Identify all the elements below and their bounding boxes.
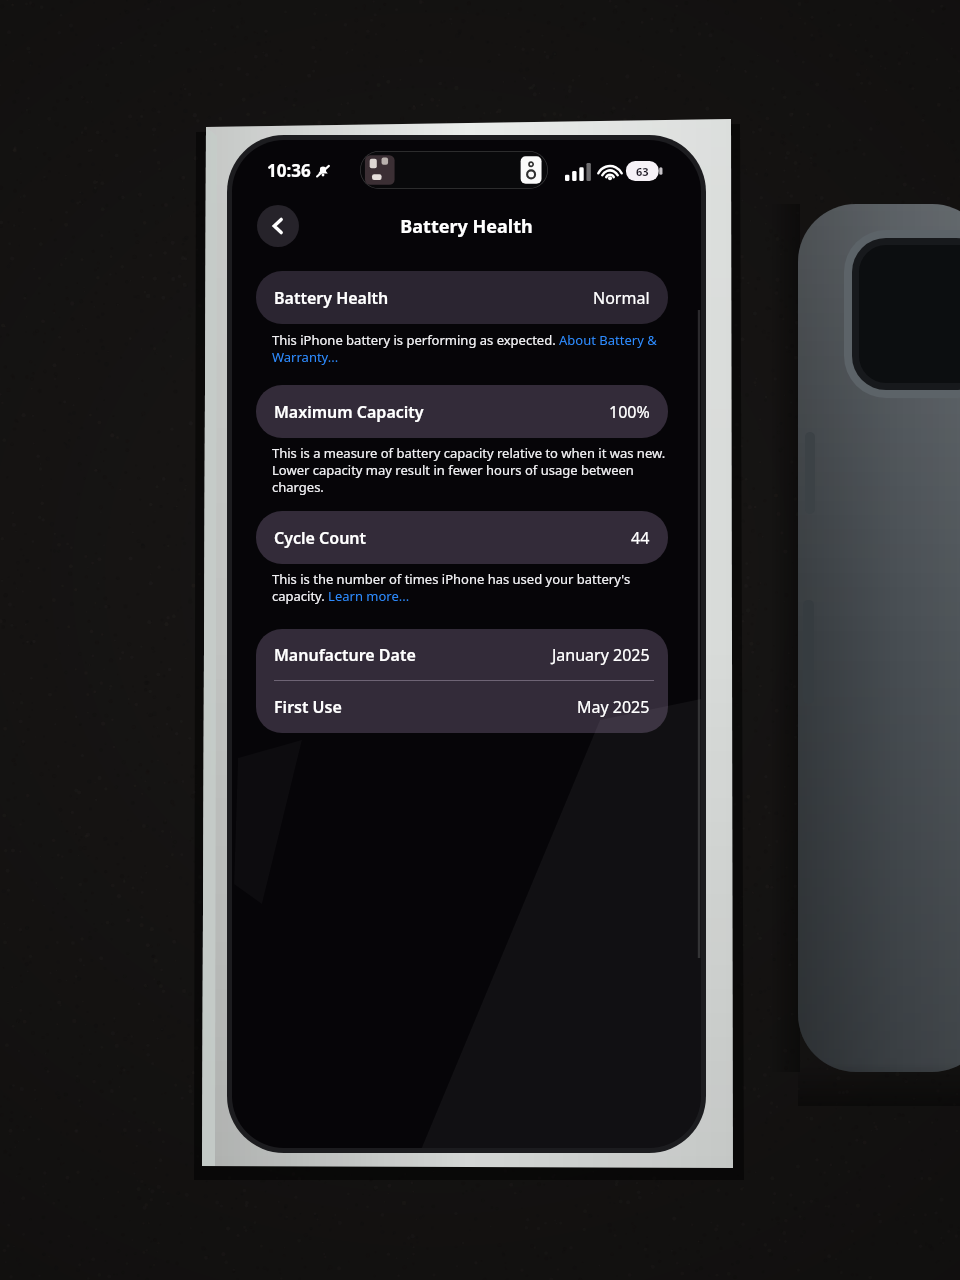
button[interactable]: Maximum Capacity <box>256 385 668 438</box>
button[interactable]: This is the number of times iPhone has u… <box>272 570 666 605</box>
staticText: This is a measure of battery capacity re… <box>272 444 666 496</box>
staticText: Battery Health <box>400 214 533 239</box>
button[interactable]: Manufacture Date <box>256 629 668 680</box>
staticText: 10:36 <box>267 159 311 182</box>
button[interactable]: Back <box>257 205 299 247</box>
staticText: January 2025 <box>552 644 650 666</box>
staticText: Normal <box>593 287 650 309</box>
button[interactable]: This iPhone battery is performing as exp… <box>272 331 666 366</box>
staticText: Manufacture Date <box>274 644 416 666</box>
staticText: First Use <box>274 696 342 718</box>
staticText: Cycle Count <box>274 527 367 549</box>
button[interactable]: Battery Health <box>256 271 668 324</box>
button[interactable]: First Use <box>256 681 668 733</box>
button[interactable]: Live Activity <box>360 151 548 189</box>
button[interactable]: Cycle Count <box>256 511 668 564</box>
staticText: May 2025 <box>577 696 650 718</box>
staticText: 63 <box>636 164 649 179</box>
staticText: Battery Health <box>274 287 389 309</box>
staticText: 100% <box>609 401 650 423</box>
staticText: 44 <box>631 527 650 549</box>
staticText: Maximum Capacity <box>274 401 424 423</box>
